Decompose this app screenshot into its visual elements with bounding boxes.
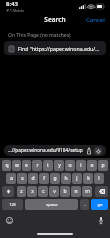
button[interactable]: j <box>72 173 82 184</box>
button[interactable]: m <box>82 186 92 197</box>
staticText: 8:43 <box>6 0 18 8</box>
staticText: Find "https://paper.winona.edu/91… <box>18 45 101 52</box>
staticText: . <box>84 202 86 208</box>
button[interactable]: q <box>2 160 11 171</box>
staticText: c <box>42 188 45 195</box>
staticText: v <box>53 188 56 195</box>
button[interactable]: . <box>80 199 89 210</box>
button[interactable]: x <box>27 186 37 197</box>
staticText: i <box>80 162 82 169</box>
staticText: 123 <box>9 202 16 207</box>
button[interactable]: n <box>71 186 81 197</box>
button[interactable]: g <box>50 173 60 184</box>
staticText: k <box>87 175 90 182</box>
staticText: t <box>47 162 49 169</box>
button[interactable]: …//paper.winona.edu/9164/setup <box>4 145 106 156</box>
button[interactable]: z <box>17 186 26 197</box>
staticText: …//paper.winona.edu/9164/setup <box>8 147 84 154</box>
button[interactable]: c <box>38 186 48 197</box>
button[interactable]: o <box>87 160 97 171</box>
button[interactable]: Backspace <box>95 186 108 197</box>
button[interactable]: f <box>39 173 49 184</box>
button[interactable]: k <box>83 173 93 184</box>
button[interactable]: i <box>76 160 86 171</box>
staticText: m <box>85 188 90 195</box>
staticText: b <box>63 188 67 195</box>
staticText: w <box>15 162 19 169</box>
staticText: y <box>58 162 61 169</box>
button[interactable]: Find "https://paper.winona.edu/91… <box>4 41 106 55</box>
button[interactable]: Emoji <box>5 216 14 225</box>
button[interactable]: b <box>60 186 70 197</box>
button[interactable]: h <box>61 173 71 184</box>
button[interactable]: w <box>12 160 21 171</box>
button[interactable]: Dictate <box>96 216 105 225</box>
staticText: z <box>20 188 23 195</box>
button[interactable]: 123 <box>2 199 23 210</box>
staticText: q <box>5 162 9 169</box>
button[interactable]: r <box>32 160 42 171</box>
button[interactable]: t <box>43 160 53 171</box>
button[interactable]: y <box>54 160 64 171</box>
staticText: r <box>36 162 39 169</box>
staticText: l <box>98 175 100 182</box>
staticText: d <box>31 175 35 182</box>
staticText: f <box>43 175 45 182</box>
button[interactable]: go <box>91 199 108 210</box>
button[interactable]: a <box>6 173 16 184</box>
staticText: x <box>31 188 34 195</box>
button[interactable]: d <box>28 173 38 184</box>
button[interactable]: v <box>49 186 59 197</box>
staticText: s <box>21 175 24 182</box>
button[interactable]: space <box>25 199 78 210</box>
staticText: h <box>64 175 68 182</box>
button[interactable]: Share <box>86 147 91 154</box>
staticText: On This Page (no matches) <box>8 32 71 39</box>
staticText: j <box>76 175 78 182</box>
staticText: go <box>97 202 103 208</box>
button[interactable]: p <box>98 160 108 171</box>
staticText: T-Mobile <box>10 8 25 13</box>
staticText: g <box>53 175 57 182</box>
button[interactable]: Shift <box>2 186 14 197</box>
staticText: a <box>10 175 13 182</box>
staticText: u <box>68 162 72 169</box>
staticText: space <box>46 202 58 208</box>
staticText: n <box>74 188 78 195</box>
button[interactable]: Page settings <box>94 147 102 155</box>
button[interactable]: u <box>65 160 75 171</box>
staticText: Search <box>44 15 66 24</box>
button[interactable]: Cancel <box>81 14 110 26</box>
staticText: o <box>90 162 94 169</box>
button[interactable]: s <box>17 173 27 184</box>
staticText: e <box>25 162 28 169</box>
staticText: p <box>101 162 105 169</box>
staticText: Cancel <box>86 16 105 24</box>
button[interactable]: l <box>94 173 104 184</box>
button[interactable]: e <box>22 160 31 171</box>
